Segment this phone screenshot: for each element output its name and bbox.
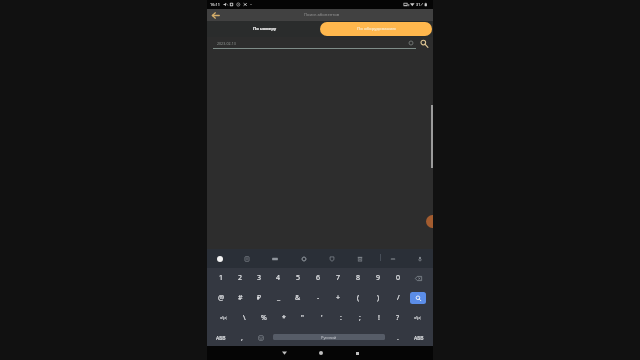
button[interactable]: 1 xyxy=(212,268,231,288)
button[interactable]: 5 xyxy=(288,268,308,288)
button[interactable]: Search xyxy=(411,36,424,49)
staticText: 2 xyxy=(238,273,243,283)
button[interactable]: 0 xyxy=(388,268,408,288)
button[interactable]: ) xyxy=(368,288,388,308)
button[interactable]: Clear xyxy=(406,38,415,47)
button[interactable]: Voice xyxy=(414,249,426,268)
button[interactable]: 9 xyxy=(368,268,388,288)
staticText: \ xyxy=(243,313,246,323)
button[interactable]: \ xyxy=(234,308,254,328)
staticText: ' xyxy=(321,313,323,323)
staticText: 0 xyxy=(396,273,401,283)
button[interactable]: Stickers xyxy=(326,249,338,268)
button[interactable]: По номеру xyxy=(207,21,320,37)
staticText: : xyxy=(340,313,342,323)
button[interactable]: 7 xyxy=(328,268,348,288)
staticText: Поиск абонентов xyxy=(304,12,340,18)
button[interactable]: Add xyxy=(426,215,433,228)
staticText: ? xyxy=(396,313,400,323)
button[interactable]: ! xyxy=(369,308,388,328)
staticText: 6 xyxy=(316,273,321,283)
button[interactable]: " xyxy=(293,308,312,328)
staticText: & xyxy=(295,293,301,303)
staticText: ) xyxy=(377,293,380,303)
button[interactable]: Home xyxy=(314,346,328,360)
button[interactable]: Back xyxy=(210,10,221,21)
button[interactable]: Emoji xyxy=(253,328,269,348)
staticText: 4 xyxy=(276,273,281,283)
button[interactable]: Back xyxy=(277,346,291,360)
button[interactable]: . xyxy=(390,328,406,348)
staticText: 16:11 xyxy=(210,2,220,7)
staticText: # xyxy=(238,293,243,303)
button[interactable]: More xyxy=(387,249,399,268)
staticText: % xyxy=(261,313,267,323)
staticText: 8 xyxy=(356,273,361,283)
staticText: 5 xyxy=(296,273,301,283)
staticText: 7 xyxy=(336,273,341,283)
staticText: * xyxy=(282,313,286,323)
staticText: ; xyxy=(359,313,361,323)
button[interactable]: АБВ xyxy=(211,328,231,348)
staticText: 2023-02-13 xyxy=(217,41,236,46)
button[interactable]: + xyxy=(328,288,348,308)
button[interactable]: 3 xyxy=(250,268,269,288)
staticText: " xyxy=(301,313,304,323)
button[interactable]: ? xyxy=(388,308,407,328)
button[interactable]: Settings xyxy=(298,249,310,268)
button[interactable]: 4 xyxy=(269,268,288,288)
button[interactable]: / xyxy=(388,288,408,308)
staticText: / xyxy=(397,293,400,303)
staticText: По номеру xyxy=(253,26,277,32)
button[interactable]: More symbols xyxy=(212,308,234,328)
button[interactable]: Google xyxy=(214,249,226,268)
button[interactable]: ; xyxy=(350,308,369,328)
button[interactable]: ₽ xyxy=(250,288,269,308)
staticText: . xyxy=(397,333,399,343)
button[interactable]: ( xyxy=(348,288,368,308)
staticText: _ xyxy=(277,293,281,303)
button[interactable]: , xyxy=(234,328,250,348)
button[interactable]: More symbols xyxy=(407,308,428,328)
staticText: АБВ xyxy=(216,335,226,342)
staticText: , xyxy=(241,333,243,343)
staticText: 31 xyxy=(416,2,421,7)
button[interactable]: 8 xyxy=(348,268,368,288)
staticText: =\< xyxy=(414,315,421,321)
staticText: ! xyxy=(378,313,380,323)
staticText: 1 xyxy=(219,273,224,283)
button[interactable]: @ xyxy=(212,288,231,308)
button[interactable]: GIF xyxy=(269,249,281,268)
button[interactable]: 6 xyxy=(308,268,328,288)
staticText: =\< xyxy=(220,315,227,321)
button[interactable]: : xyxy=(331,308,350,328)
staticText: @ xyxy=(218,293,225,303)
button[interactable]: * xyxy=(274,308,293,328)
button[interactable]: Clipboard xyxy=(241,249,253,268)
button[interactable]: ' xyxy=(312,308,331,328)
button[interactable]: # xyxy=(231,288,250,308)
button[interactable]: Русский xyxy=(273,334,385,340)
staticText: АБВ xyxy=(414,335,424,342)
button[interactable]: - xyxy=(308,288,328,308)
button[interactable]: Search xyxy=(410,292,426,304)
button[interactable]: АБВ xyxy=(409,328,429,348)
button[interactable]: _ xyxy=(269,288,288,308)
button[interactable]: Themes xyxy=(354,249,366,268)
staticText: 3 xyxy=(257,273,262,283)
button[interactable]: По оборудованию xyxy=(320,22,432,36)
button[interactable]: % xyxy=(254,308,274,328)
staticText: - xyxy=(317,293,320,303)
button[interactable]: Backspace xyxy=(408,268,428,288)
button[interactable]: Recents xyxy=(350,346,364,360)
staticText: ₽ xyxy=(257,293,262,303)
staticText: + xyxy=(336,293,341,303)
button[interactable]: & xyxy=(288,288,308,308)
staticText: ( xyxy=(357,293,360,303)
button[interactable]: 2 xyxy=(231,268,250,288)
staticText: 9 xyxy=(376,273,381,283)
staticText: По оборудованию xyxy=(357,26,396,32)
staticText: Русский xyxy=(321,335,337,340)
